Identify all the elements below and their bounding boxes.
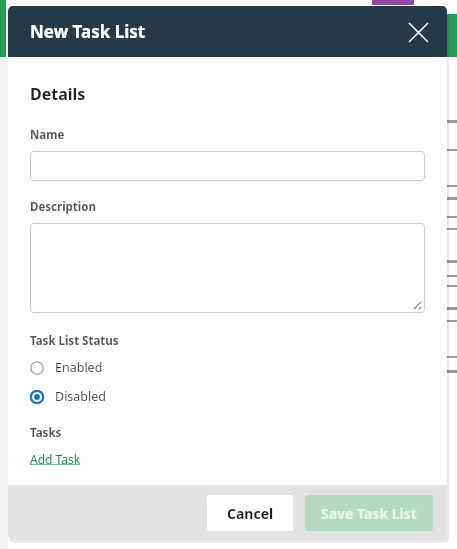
staticText: Tasks [30, 425, 62, 441]
staticText: Description [30, 199, 96, 215]
button[interactable]: Add Task [30, 451, 81, 467]
staticText: New Task List [30, 20, 146, 43]
staticText: Enabled [55, 359, 103, 376]
button[interactable] [30, 223, 425, 313]
staticText: Disabled [55, 388, 107, 405]
button[interactable]: Disabled [30, 388, 107, 405]
button[interactable]: Close [399, 13, 437, 51]
staticText: Cancel [227, 504, 274, 523]
button[interactable] [30, 151, 425, 181]
button[interactable]: Enabled [30, 359, 103, 376]
staticText: Add Task [30, 451, 81, 467]
staticText: Save Task List [321, 504, 417, 523]
button[interactable]: Save Task List [305, 495, 433, 531]
staticText: Details [30, 83, 86, 105]
staticText: Name [30, 127, 65, 143]
button[interactable]: Cancel [207, 495, 293, 531]
staticText: Task List Status [30, 333, 119, 349]
